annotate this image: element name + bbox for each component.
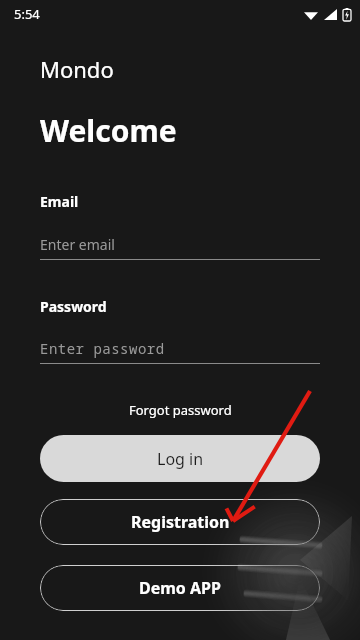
staticText: Mondo	[40, 54, 114, 84]
staticText: Enter email	[40, 235, 115, 254]
staticText: Enter password	[40, 339, 165, 358]
staticText: 5:54	[14, 5, 40, 23]
button[interactable]: Forgot password	[0, 399, 360, 421]
staticText: Registration	[131, 511, 230, 533]
button[interactable]: Enter email	[40, 235, 320, 260]
button[interactable]: Demo APP	[40, 565, 320, 611]
staticText: Log in	[157, 448, 204, 470]
staticText: Password	[40, 297, 107, 316]
button[interactable]: Enter password	[40, 339, 320, 364]
staticText: Welcome	[40, 110, 177, 151]
button[interactable]: Registration	[40, 499, 320, 545]
button[interactable]: Log in	[40, 435, 320, 482]
staticText: Email	[40, 192, 79, 211]
staticText: Demo APP	[139, 577, 221, 599]
staticText: Forgot password	[129, 401, 232, 419]
